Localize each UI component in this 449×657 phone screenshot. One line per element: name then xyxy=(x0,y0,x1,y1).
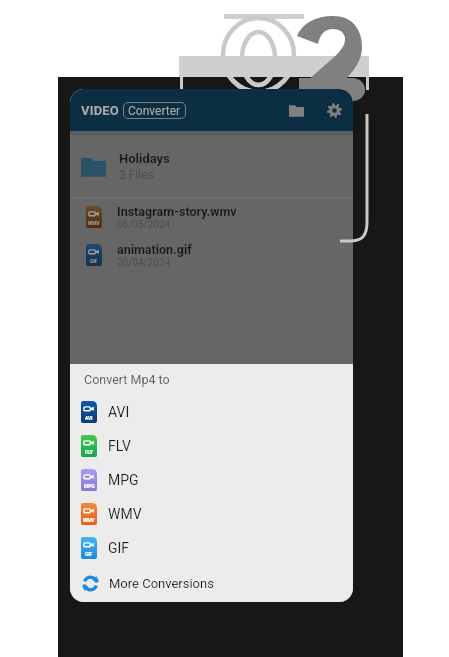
staticText: Convert Mp4 to xyxy=(84,372,170,387)
staticText: AVI xyxy=(85,415,93,421)
button[interactable]: AVI xyxy=(70,395,353,429)
staticText: WMV xyxy=(83,517,95,523)
button[interactable]: WMV xyxy=(70,198,353,236)
staticText: 20/04/2024 xyxy=(117,257,171,269)
staticText: MPG xyxy=(84,483,95,489)
button[interactable]: More Conversions xyxy=(70,565,353,602)
staticText: Converter xyxy=(128,104,181,118)
staticText: GIF xyxy=(108,540,130,556)
staticText: VIDEO xyxy=(81,103,120,118)
staticText: MPG xyxy=(108,472,139,488)
button[interactable]: WMV xyxy=(70,497,353,531)
button[interactable]: GIF xyxy=(70,531,353,565)
button[interactable]: GIF xyxy=(70,236,353,274)
button[interactable]: Settings xyxy=(319,95,349,125)
staticText: FLV xyxy=(85,449,93,455)
staticText: WMV xyxy=(108,506,142,522)
button[interactable]: Holidays xyxy=(70,135,353,197)
button[interactable]: MPG xyxy=(70,463,353,497)
staticText: animation.gif xyxy=(117,242,192,257)
button[interactable]: Browse folders xyxy=(281,95,311,125)
staticText: AVI xyxy=(108,404,130,420)
staticText: 06/05/2024 xyxy=(117,219,171,231)
staticText: More Conversions xyxy=(109,576,214,591)
staticText: GIF xyxy=(90,258,98,264)
staticText: WMV xyxy=(88,220,100,226)
staticText: GIF xyxy=(85,551,93,557)
staticText: 3 Files xyxy=(119,168,154,182)
staticText: Instagram-story.wmv xyxy=(117,204,237,219)
button[interactable]: FLV xyxy=(70,429,353,463)
staticText: FLV xyxy=(108,438,131,454)
staticText: Holidays xyxy=(119,151,170,166)
